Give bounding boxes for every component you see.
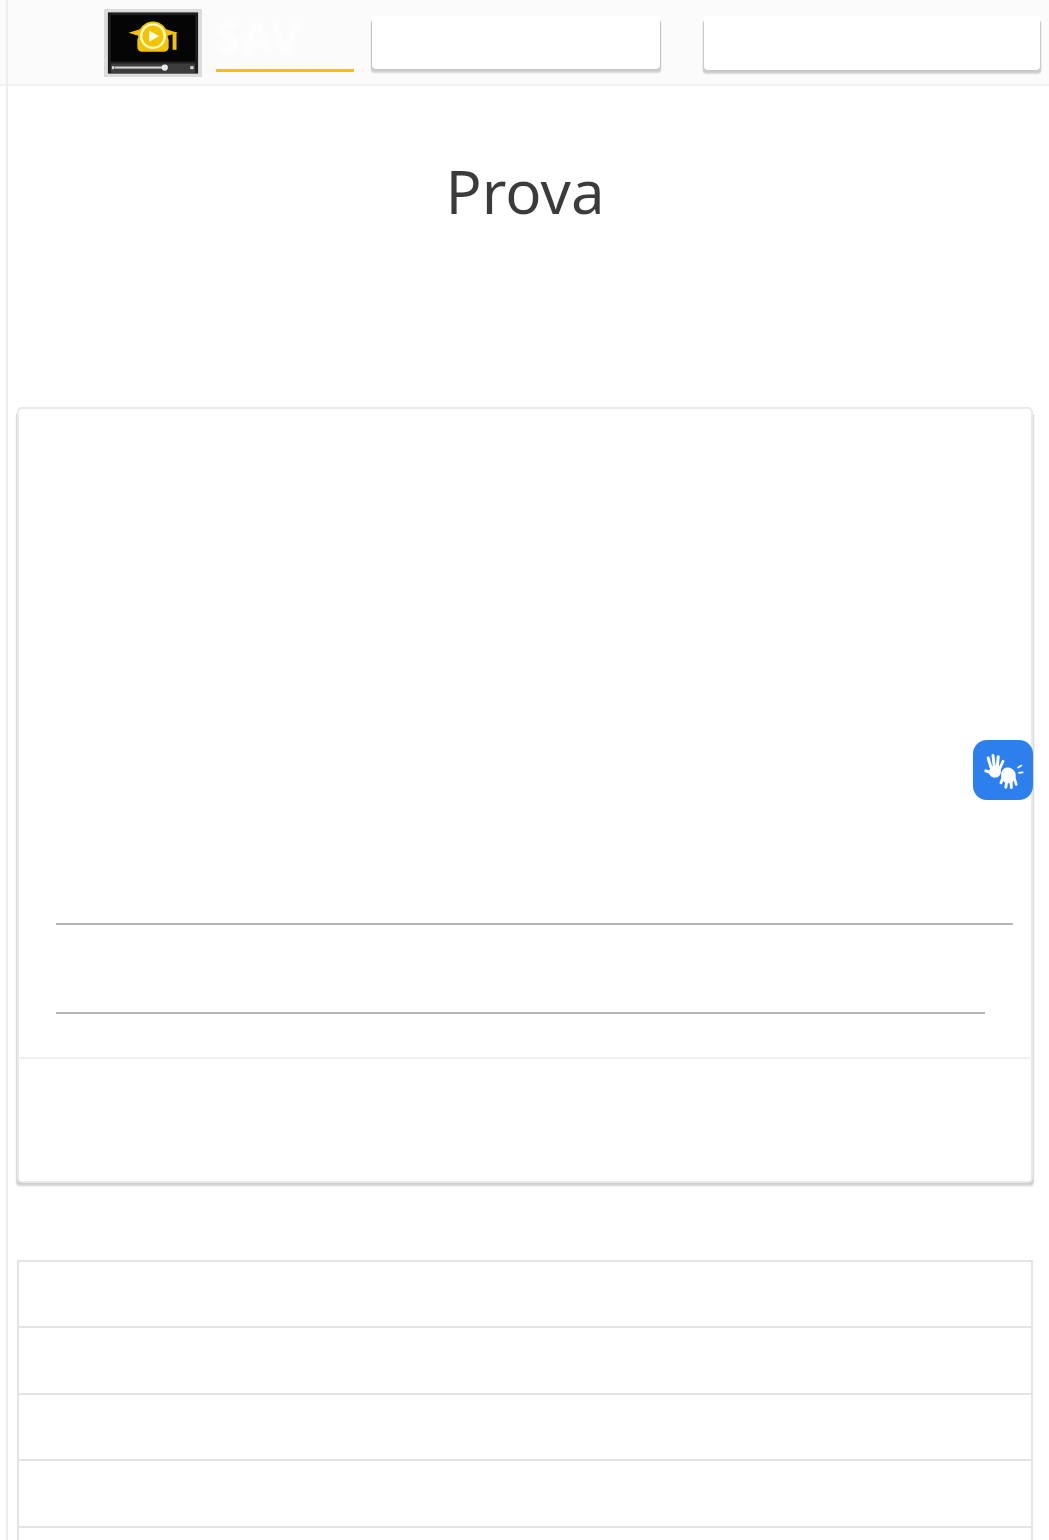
- button[interactable]: [18, 1261, 1032, 1327]
- staticText: Prova: [445, 150, 605, 232]
- button[interactable]: [18, 408, 1032, 1182]
- button[interactable]: VLibras sign language translator: [973, 740, 1033, 800]
- button[interactable]: [18, 1327, 1032, 1393]
- button[interactable]: SAV Sala de Aula Virtual: [216, 7, 354, 79]
- button[interactable]: SAV home: [104, 9, 202, 77]
- button[interactable]: [18, 1393, 1032, 1459]
- button[interactable]: [18, 1459, 1032, 1525]
